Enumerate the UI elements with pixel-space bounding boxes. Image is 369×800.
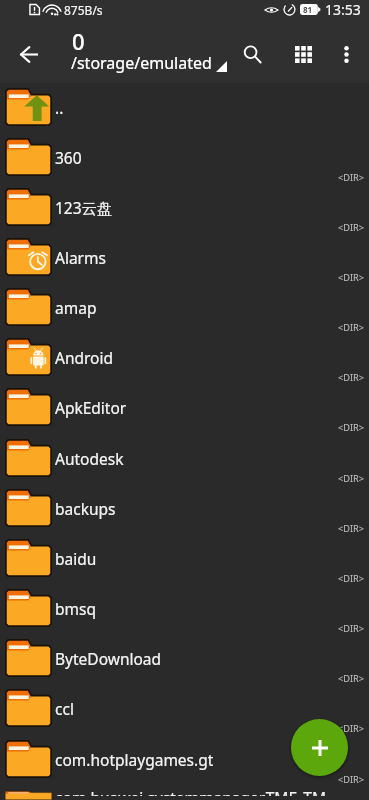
staticText: <DIR>	[338, 773, 365, 786]
staticText: baidu	[55, 548, 97, 569]
staticText: <DIR>	[338, 572, 365, 585]
button[interactable]: amap	[0, 288, 369, 338]
staticText: 81	[303, 4, 313, 15]
button[interactable]: Back	[13, 38, 45, 70]
button[interactable]: bmsq	[0, 589, 369, 639]
button[interactable]: backups	[0, 489, 369, 539]
staticText: 123云盘	[55, 197, 113, 218]
button[interactable]: 123云盘	[0, 188, 369, 238]
staticText: ..	[55, 97, 64, 118]
staticText: com.hotplaygames.gt	[55, 749, 214, 770]
staticText: /storage/emulated	[71, 52, 212, 74]
button[interactable]: 360	[0, 138, 369, 188]
staticText: ApkEditor	[55, 397, 127, 418]
staticText: Android	[55, 347, 114, 368]
staticText: 0	[72, 26, 85, 56]
button[interactable]: More options	[327, 30, 366, 78]
button[interactable]: Alarms	[0, 238, 369, 288]
staticText: <DIR>	[338, 221, 365, 234]
button[interactable]: com.hotplaygames.gt	[0, 740, 369, 790]
staticText: <DIR>	[338, 722, 365, 735]
staticText: ByteDownload	[55, 648, 162, 669]
staticText: 360	[55, 147, 82, 168]
button[interactable]: ccl	[0, 689, 369, 739]
staticText: 875B/s	[64, 2, 103, 18]
button[interactable]: ..	[0, 88, 369, 138]
staticText: <DIR>	[338, 421, 365, 434]
staticText: 13:53	[325, 0, 361, 19]
staticText: backups	[55, 498, 116, 519]
button[interactable]: Grid view	[282, 30, 325, 78]
button[interactable]: baidu	[0, 539, 369, 589]
staticText: <DIR>	[338, 371, 365, 384]
staticText: bmsq	[55, 598, 96, 619]
staticText: <DIR>	[338, 622, 365, 635]
button[interactable]: ByteDownload	[0, 639, 369, 689]
button[interactable]: Autodesk	[0, 439, 369, 489]
staticText: com.huawei.systemmanager.TMF_TM	[55, 787, 326, 796]
staticText: Alarms	[55, 247, 106, 268]
staticText: <DIR>	[338, 321, 365, 334]
staticText: <DIR>	[338, 472, 365, 485]
staticText: amap	[55, 297, 97, 318]
staticText: <DIR>	[338, 672, 365, 685]
staticText: ccl	[55, 698, 74, 719]
button[interactable]: Add	[291, 719, 348, 776]
button[interactable]: Search	[230, 30, 274, 78]
staticText: <DIR>	[338, 522, 365, 535]
staticText: <DIR>	[338, 171, 365, 184]
staticText: <DIR>	[338, 271, 365, 284]
button[interactable]: ApkEditor	[0, 388, 369, 438]
button[interactable]: Android	[0, 338, 369, 388]
staticText: Autodesk	[55, 448, 124, 469]
